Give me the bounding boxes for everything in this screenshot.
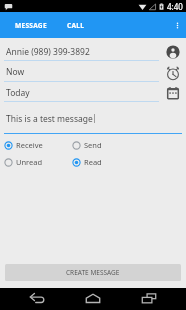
staticText: CALL xyxy=(67,21,85,30)
button[interactable]: Recent apps xyxy=(130,288,168,310)
button[interactable]: Today xyxy=(0,86,186,106)
button[interactable]: This is a test message xyxy=(4,112,182,134)
staticText: CREATE MESSAGE xyxy=(66,268,120,277)
staticText: MESSAGE xyxy=(15,21,47,30)
staticText: Annie (989) 399-3892 xyxy=(6,46,90,58)
button[interactable]: Send xyxy=(72,138,140,152)
button[interactable]: MESSAGE xyxy=(5,12,57,38)
staticText: 4:40 xyxy=(167,1,183,12)
button[interactable]: Now xyxy=(0,65,186,85)
button[interactable]: Back xyxy=(18,288,56,310)
staticText: Send xyxy=(84,140,102,150)
button[interactable]: Read xyxy=(72,155,140,169)
button[interactable]: Receive xyxy=(4,138,72,152)
staticText: Receive xyxy=(16,140,43,150)
staticText: Today xyxy=(6,87,30,99)
staticText: This is a test message xyxy=(6,113,93,125)
button[interactable]: Home xyxy=(74,288,112,310)
button[interactable]: More options xyxy=(168,12,186,38)
button[interactable]: Unread xyxy=(4,155,72,169)
staticText: Read xyxy=(84,157,102,167)
button[interactable]: CALL xyxy=(57,12,95,38)
button[interactable]: CREATE MESSAGE xyxy=(5,264,181,281)
staticText: Now xyxy=(6,66,25,78)
button[interactable]: Annie (989) 399-3892 xyxy=(0,45,186,65)
staticText: Unread xyxy=(16,157,43,167)
